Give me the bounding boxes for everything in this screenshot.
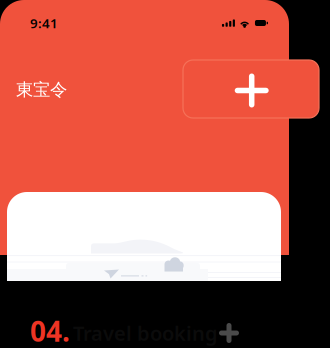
- staticText: 東宝令: [16, 79, 67, 100]
- staticText: Travel booking: [73, 320, 218, 346]
- staticText: 9:41: [30, 14, 58, 32]
- button[interactable]: Add: [183, 60, 319, 118]
- staticText: 04.: [30, 312, 70, 348]
